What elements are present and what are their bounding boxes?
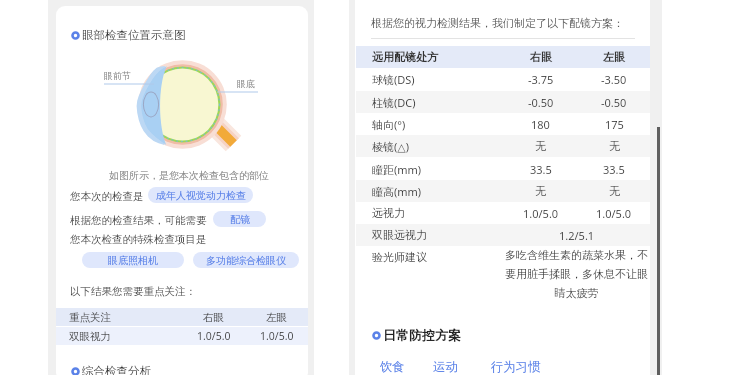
staticText: 33.5 — [530, 162, 552, 177]
staticText: 柱镜(DC) — [372, 95, 416, 110]
staticText: -3.75 — [528, 72, 554, 87]
staticText: 球镜(DS) — [372, 72, 415, 87]
staticText: -3.50 — [601, 72, 627, 87]
staticText: 日常防控方案 — [383, 327, 461, 343]
button[interactable]: 多功能综合检眼仪 — [193, 252, 299, 268]
staticText: 瞳距(mm) — [372, 162, 422, 177]
staticText: 轴向(°) — [372, 117, 406, 132]
staticText: 无 — [535, 139, 546, 153]
staticText: 右眼 — [203, 311, 224, 324]
staticText: 您本次检查的特殊检查项目是 — [70, 233, 207, 246]
staticText: 1.0/5.0 — [523, 206, 559, 221]
staticText: 175 — [605, 117, 624, 132]
staticText: 左眼 — [266, 311, 287, 324]
staticText: 无 — [609, 139, 620, 153]
staticText: 33.5 — [603, 162, 625, 177]
staticText: 无 — [609, 184, 620, 198]
staticText: 左眼 — [603, 50, 625, 64]
staticText: 您本次的检查是 — [70, 190, 144, 203]
staticText: 多吃含维生素的蔬菜水果，不要用脏手揉眼，多休息不让眼睛太疲劳 — [503, 248, 650, 301]
button[interactable]: 行为习惯 — [491, 359, 541, 374]
staticText: 如图所示，是您本次检查包含的部位 — [109, 169, 269, 182]
button[interactable]: 成年人视觉动力检查 — [148, 187, 253, 203]
staticText: 配镜 — [230, 213, 250, 226]
staticText: 重点关注 — [69, 311, 111, 324]
staticText: 双眼远视力 — [372, 228, 427, 242]
staticText: 1.0/5.0 — [596, 206, 632, 221]
staticText: -0.50 — [601, 95, 627, 110]
staticText: 根据您的检查结果，可能需要 — [70, 214, 207, 227]
staticText: 眼底 — [237, 78, 255, 89]
staticText: 无 — [535, 184, 546, 198]
staticText: 眼前节 — [104, 70, 131, 81]
staticText: 以下结果您需要重点关注： — [70, 285, 196, 298]
staticText: 远视力 — [372, 206, 405, 220]
staticText: 根据您的视力检测结果，我们制定了以下配镜方案： — [371, 16, 624, 30]
button[interactable]: 配镜 — [213, 211, 266, 227]
staticText: -0.50 — [528, 95, 554, 110]
button[interactable]: 眼底照相机 — [82, 252, 184, 268]
button[interactable]: 运动 — [433, 359, 458, 374]
staticText: 棱镜(△) — [372, 139, 410, 154]
staticText: 远用配镜处方 — [372, 50, 438, 64]
staticText: 综合检查分析 — [82, 364, 151, 375]
staticText: 眼底照相机 — [108, 254, 158, 267]
staticText: 验光师建议 — [372, 250, 427, 264]
staticText: 1.0/5.0 — [197, 329, 231, 343]
staticText: 双眼视力 — [69, 330, 111, 343]
staticText: 眼部检查位置示意图 — [82, 28, 186, 42]
staticText: 180 — [531, 117, 550, 132]
staticText: 1.0/5.0 — [260, 329, 294, 343]
button[interactable]: 饮食 — [380, 359, 405, 374]
staticText: 瞳高(mm) — [372, 184, 422, 199]
staticText: 1.2/5.1 — [559, 228, 595, 243]
staticText: 多功能综合检眼仪 — [206, 254, 286, 267]
staticText: 成年人视觉动力检查 — [156, 189, 246, 202]
staticText: 右眼 — [530, 50, 552, 64]
